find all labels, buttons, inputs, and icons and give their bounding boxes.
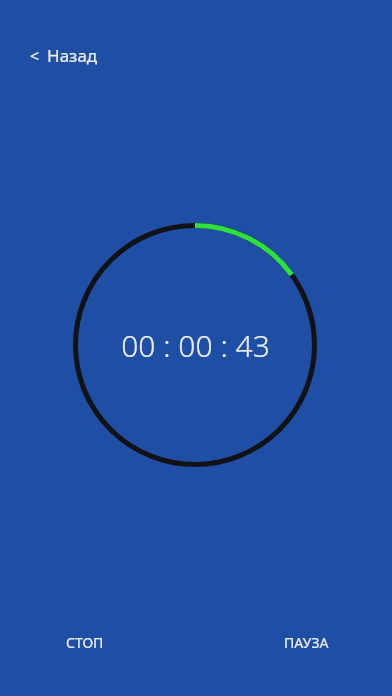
staticText: 00 : 00 : 43 [121, 325, 270, 366]
button[interactable]: < [22, 38, 106, 73]
button[interactable]: СТОП [52, 623, 118, 662]
staticText: СТОП [66, 633, 104, 652]
staticText: ПАУЗА [284, 633, 329, 652]
staticText: Назад [47, 44, 98, 67]
staticText: < [30, 45, 40, 67]
button[interactable]: ПАУЗА [270, 623, 343, 662]
